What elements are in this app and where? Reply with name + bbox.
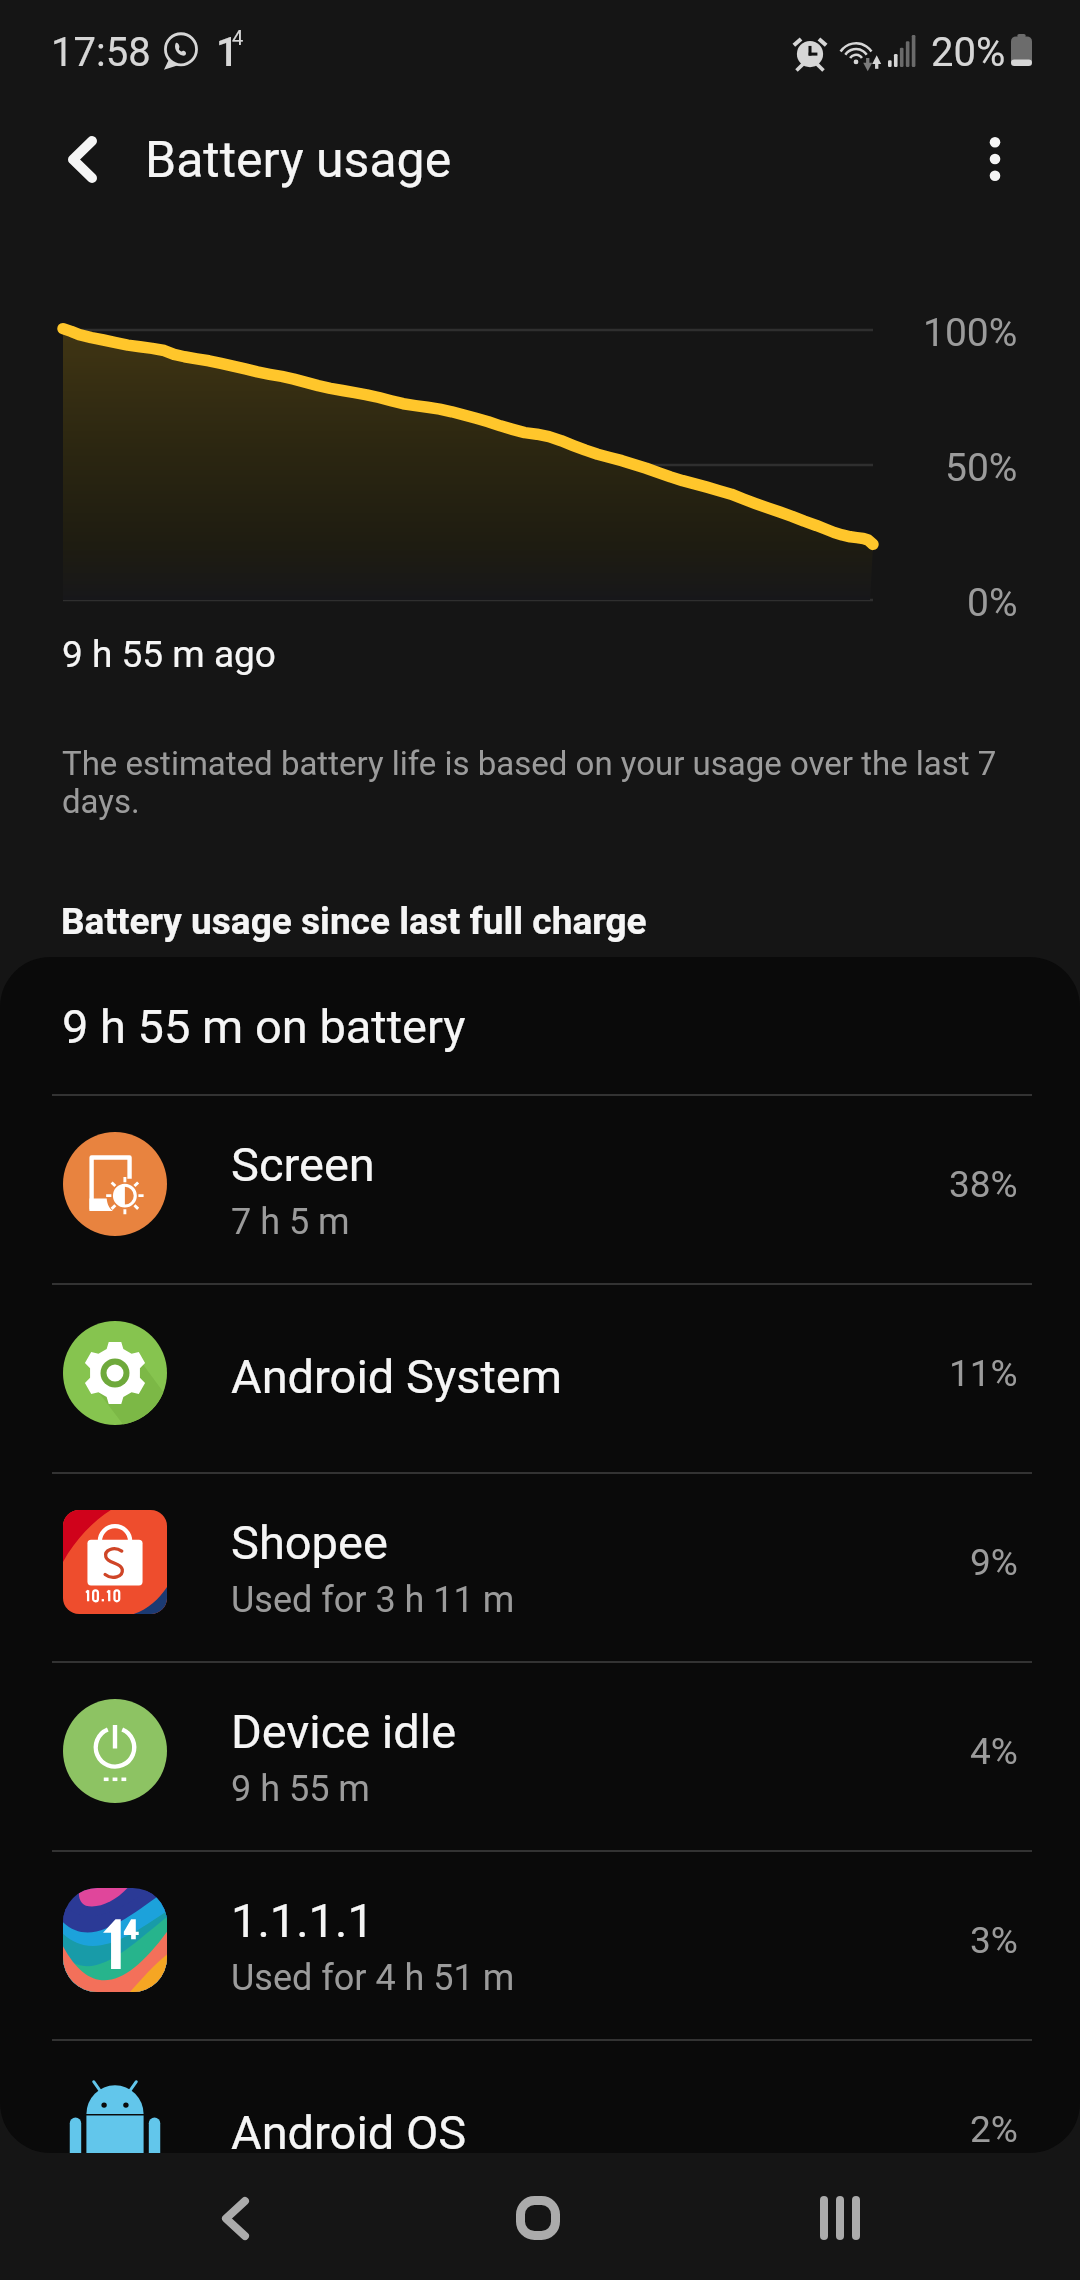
- staticText: Screen: [231, 1137, 375, 1192]
- staticText: 7 h 5 m: [231, 1201, 350, 1243]
- staticText: The estimated battery life is based on y…: [62, 744, 1010, 821]
- button[interactable]: More options: [941, 105, 1049, 213]
- button[interactable]: Android System: [0, 1279, 1080, 1468]
- button[interactable]: Shopee: [0, 1468, 1080, 1657]
- staticText: 100%: [923, 310, 1018, 356]
- staticText: 9 h 55 m: [231, 1768, 370, 1810]
- staticText: 9%: [970, 1541, 1018, 1584]
- staticText: 20%: [931, 29, 1006, 76]
- button[interactable]: Screen: [0, 1090, 1080, 1279]
- button[interactable]: Navigate up: [28, 105, 136, 213]
- staticText: 1: [216, 29, 239, 76]
- staticText: 3%: [970, 1919, 1018, 1962]
- staticText: Used for 3 h 11 m: [231, 1579, 515, 1621]
- staticText: Device idle: [231, 1704, 457, 1759]
- staticText: Battery usage since last full charge: [61, 900, 647, 943]
- staticText: Battery usage: [145, 131, 452, 190]
- staticText: 2%: [970, 2108, 1018, 2151]
- staticText: 0%: [967, 580, 1018, 626]
- staticText: 9 h 55 m on battery: [62, 999, 466, 1054]
- staticText: 38%: [949, 1163, 1018, 1206]
- staticText: Android OS: [231, 2105, 467, 2153]
- button[interactable]: Device idle: [0, 1657, 1080, 1846]
- button[interactable]: Home: [448, 2156, 628, 2280]
- button[interactable]: Android OS: [0, 2035, 1080, 2153]
- staticText: Used for 4 h 51 m: [231, 1957, 515, 1999]
- staticText: 4: [232, 26, 244, 49]
- button[interactable]: Recent apps: [750, 2156, 930, 2280]
- staticText: Android System: [231, 1349, 562, 1404]
- staticText: 9 h 55 m ago: [62, 633, 276, 676]
- staticText: 17:58: [51, 29, 151, 76]
- button[interactable]: 1.1.1.1: [0, 1846, 1080, 2035]
- staticText: 11%: [949, 1352, 1018, 1395]
- button[interactable]: Back: [145, 2156, 325, 2280]
- staticText: 4%: [970, 1730, 1018, 1773]
- staticText: 50%: [945, 445, 1018, 491]
- staticText: Shopee: [231, 1515, 388, 1570]
- staticText: 1.1.1.1: [231, 1893, 374, 1948]
